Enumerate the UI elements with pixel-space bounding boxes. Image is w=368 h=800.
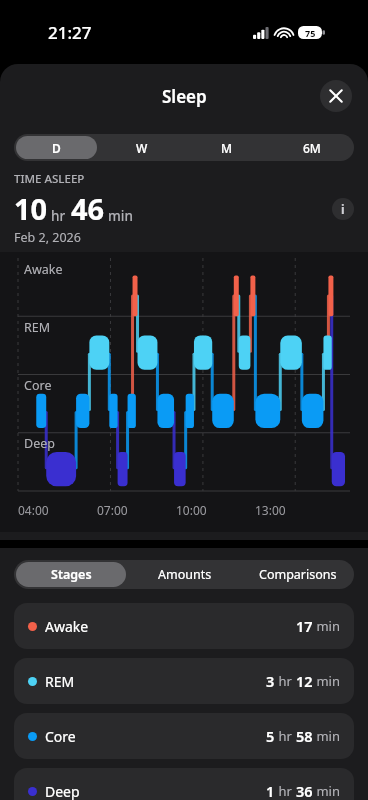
staticText: 58 (296, 726, 313, 746)
staticText: 1 (266, 781, 275, 800)
staticText: D (52, 140, 61, 156)
staticText: min (313, 617, 340, 635)
button[interactable]: Awake (14, 603, 354, 649)
staticText: Core (45, 727, 76, 746)
staticText: hr (51, 207, 66, 225)
staticText: 36 (296, 781, 313, 800)
staticText: Awake (24, 261, 63, 278)
button[interactable]: Close (320, 80, 352, 112)
staticText: TIME ASLEEP (14, 171, 85, 187)
staticText: Comparisons (259, 566, 337, 583)
staticText: 6M (303, 140, 321, 156)
staticText: W (136, 140, 148, 156)
staticText: 75 (305, 27, 316, 39)
staticText: Deep (45, 782, 80, 800)
staticText: min (313, 782, 340, 800)
staticText: Sleep (162, 85, 207, 108)
staticText: i (341, 201, 345, 217)
button[interactable]: Amounts (130, 562, 239, 587)
staticText: Core (24, 377, 52, 394)
staticText: 10 (14, 189, 48, 228)
button[interactable]: Comparisons (243, 562, 352, 587)
staticText: min (108, 207, 133, 225)
button[interactable]: REM (14, 658, 354, 704)
staticText: REM (45, 672, 75, 691)
staticText: hr (275, 782, 296, 800)
button[interactable]: Deep (14, 768, 354, 800)
staticText: 46 (71, 189, 105, 228)
staticText: 10:00 (176, 502, 207, 518)
button[interactable]: M (186, 136, 267, 159)
staticText: REM (24, 319, 51, 336)
staticText: 17 (296, 616, 313, 636)
button[interactable]: W (101, 136, 182, 159)
staticText: 04:00 (18, 502, 49, 518)
button[interactable]: D (16, 136, 97, 159)
staticText: min (313, 727, 340, 745)
button[interactable]: Info (332, 198, 354, 220)
staticText: Amounts (158, 566, 212, 583)
staticText: hr (275, 727, 296, 745)
staticText: Stages (51, 566, 92, 583)
staticText: 3 (266, 671, 275, 691)
staticText: Feb 2, 2026 (14, 229, 81, 246)
button[interactable]: Core (14, 713, 354, 759)
staticText: Awake (45, 617, 89, 636)
staticText: 12 (296, 671, 313, 691)
staticText: Deep (24, 435, 55, 452)
staticText: 13:00 (255, 502, 286, 518)
staticText: M (221, 140, 233, 156)
staticText: min (313, 672, 340, 690)
staticText: 21:27 (48, 21, 92, 44)
staticText: 5 (266, 726, 275, 746)
staticText: 07:00 (97, 502, 128, 518)
staticText: hr (275, 672, 296, 690)
button[interactable]: 6M (271, 136, 352, 159)
button[interactable]: Stages (16, 562, 126, 587)
